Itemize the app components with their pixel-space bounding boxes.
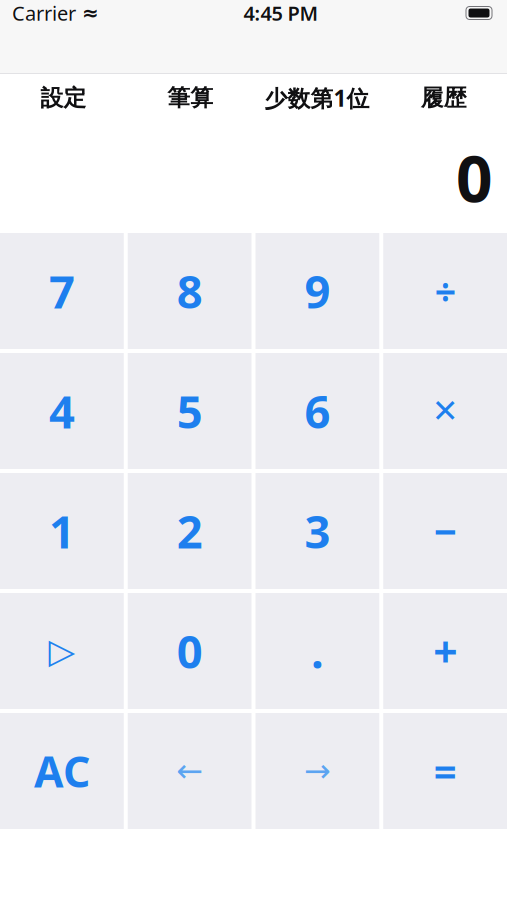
- button[interactable]: 9: [255, 233, 379, 349]
- button[interactable]: →: [255, 713, 379, 829]
- button[interactable]: −: [383, 473, 507, 589]
- staticText: 4:45 PM: [243, 0, 318, 26]
- button[interactable]: 5: [128, 353, 252, 469]
- button[interactable]: ▷: [0, 593, 124, 709]
- staticText: 1: [49, 501, 75, 561]
- button[interactable]: ✕: [383, 353, 507, 469]
- staticText: 履歴: [421, 84, 467, 112]
- staticText: ▷: [48, 631, 75, 671]
- staticText: 4: [49, 381, 75, 441]
- staticText: −: [434, 504, 457, 557]
- staticText: ←: [176, 753, 203, 789]
- staticText: 少数第1位: [264, 83, 369, 113]
- staticText: ✕: [432, 393, 459, 429]
- button[interactable]: 2: [128, 473, 252, 589]
- staticText: =: [434, 744, 457, 797]
- staticText: Carrier: [12, 0, 76, 26]
- button[interactable]: AC: [0, 713, 124, 829]
- staticText: +: [433, 623, 457, 679]
- staticText: 筆算: [167, 84, 213, 112]
- button[interactable]: ←: [128, 713, 252, 829]
- staticText: 6: [304, 381, 330, 441]
- button[interactable]: 0: [128, 593, 252, 709]
- staticText: .: [311, 621, 324, 681]
- button[interactable]: +: [383, 593, 507, 709]
- staticText: →: [304, 753, 331, 789]
- staticText: AC: [34, 743, 90, 799]
- button[interactable]: 4: [0, 353, 124, 469]
- staticText: 8: [177, 261, 203, 321]
- button[interactable]: .: [255, 593, 379, 709]
- staticText: 7: [49, 261, 75, 321]
- button[interactable]: 3: [255, 473, 379, 589]
- staticText: 2: [177, 501, 203, 561]
- staticText: 設定: [40, 84, 86, 112]
- staticText: 0: [177, 621, 203, 681]
- staticText: ≈: [82, 2, 99, 24]
- button[interactable]: 筆算: [127, 74, 254, 122]
- button[interactable]: =: [383, 713, 507, 829]
- staticText: 0: [456, 135, 493, 220]
- button[interactable]: ÷: [383, 233, 507, 349]
- button[interactable]: 履歴: [380, 74, 507, 122]
- staticText: 5: [177, 381, 203, 441]
- button[interactable]: 1: [0, 473, 124, 589]
- button[interactable]: 8: [128, 233, 252, 349]
- button[interactable]: 少数第1位: [253, 74, 380, 122]
- button[interactable]: 設定: [0, 74, 127, 122]
- button[interactable]: 7: [0, 233, 124, 349]
- button[interactable]: 6: [255, 353, 379, 469]
- staticText: ÷: [435, 266, 456, 316]
- staticText: 3: [304, 501, 330, 561]
- staticText: 9: [304, 261, 330, 321]
